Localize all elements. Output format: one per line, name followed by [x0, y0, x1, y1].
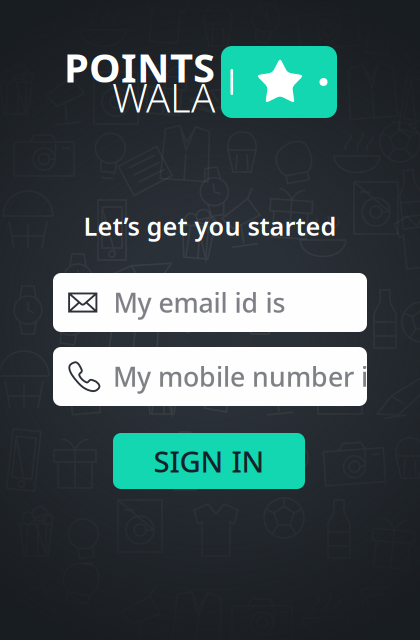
staticText: My mobile number is	[113, 359, 381, 394]
staticText: Let’s get you started	[83, 209, 336, 243]
staticText: POINTS	[64, 40, 215, 93]
staticText: My email id is	[113, 285, 285, 320]
staticText: SIGN IN	[153, 441, 264, 480]
staticText: WALA	[112, 70, 215, 123]
button[interactable]: SIGN IN	[113, 433, 305, 489]
